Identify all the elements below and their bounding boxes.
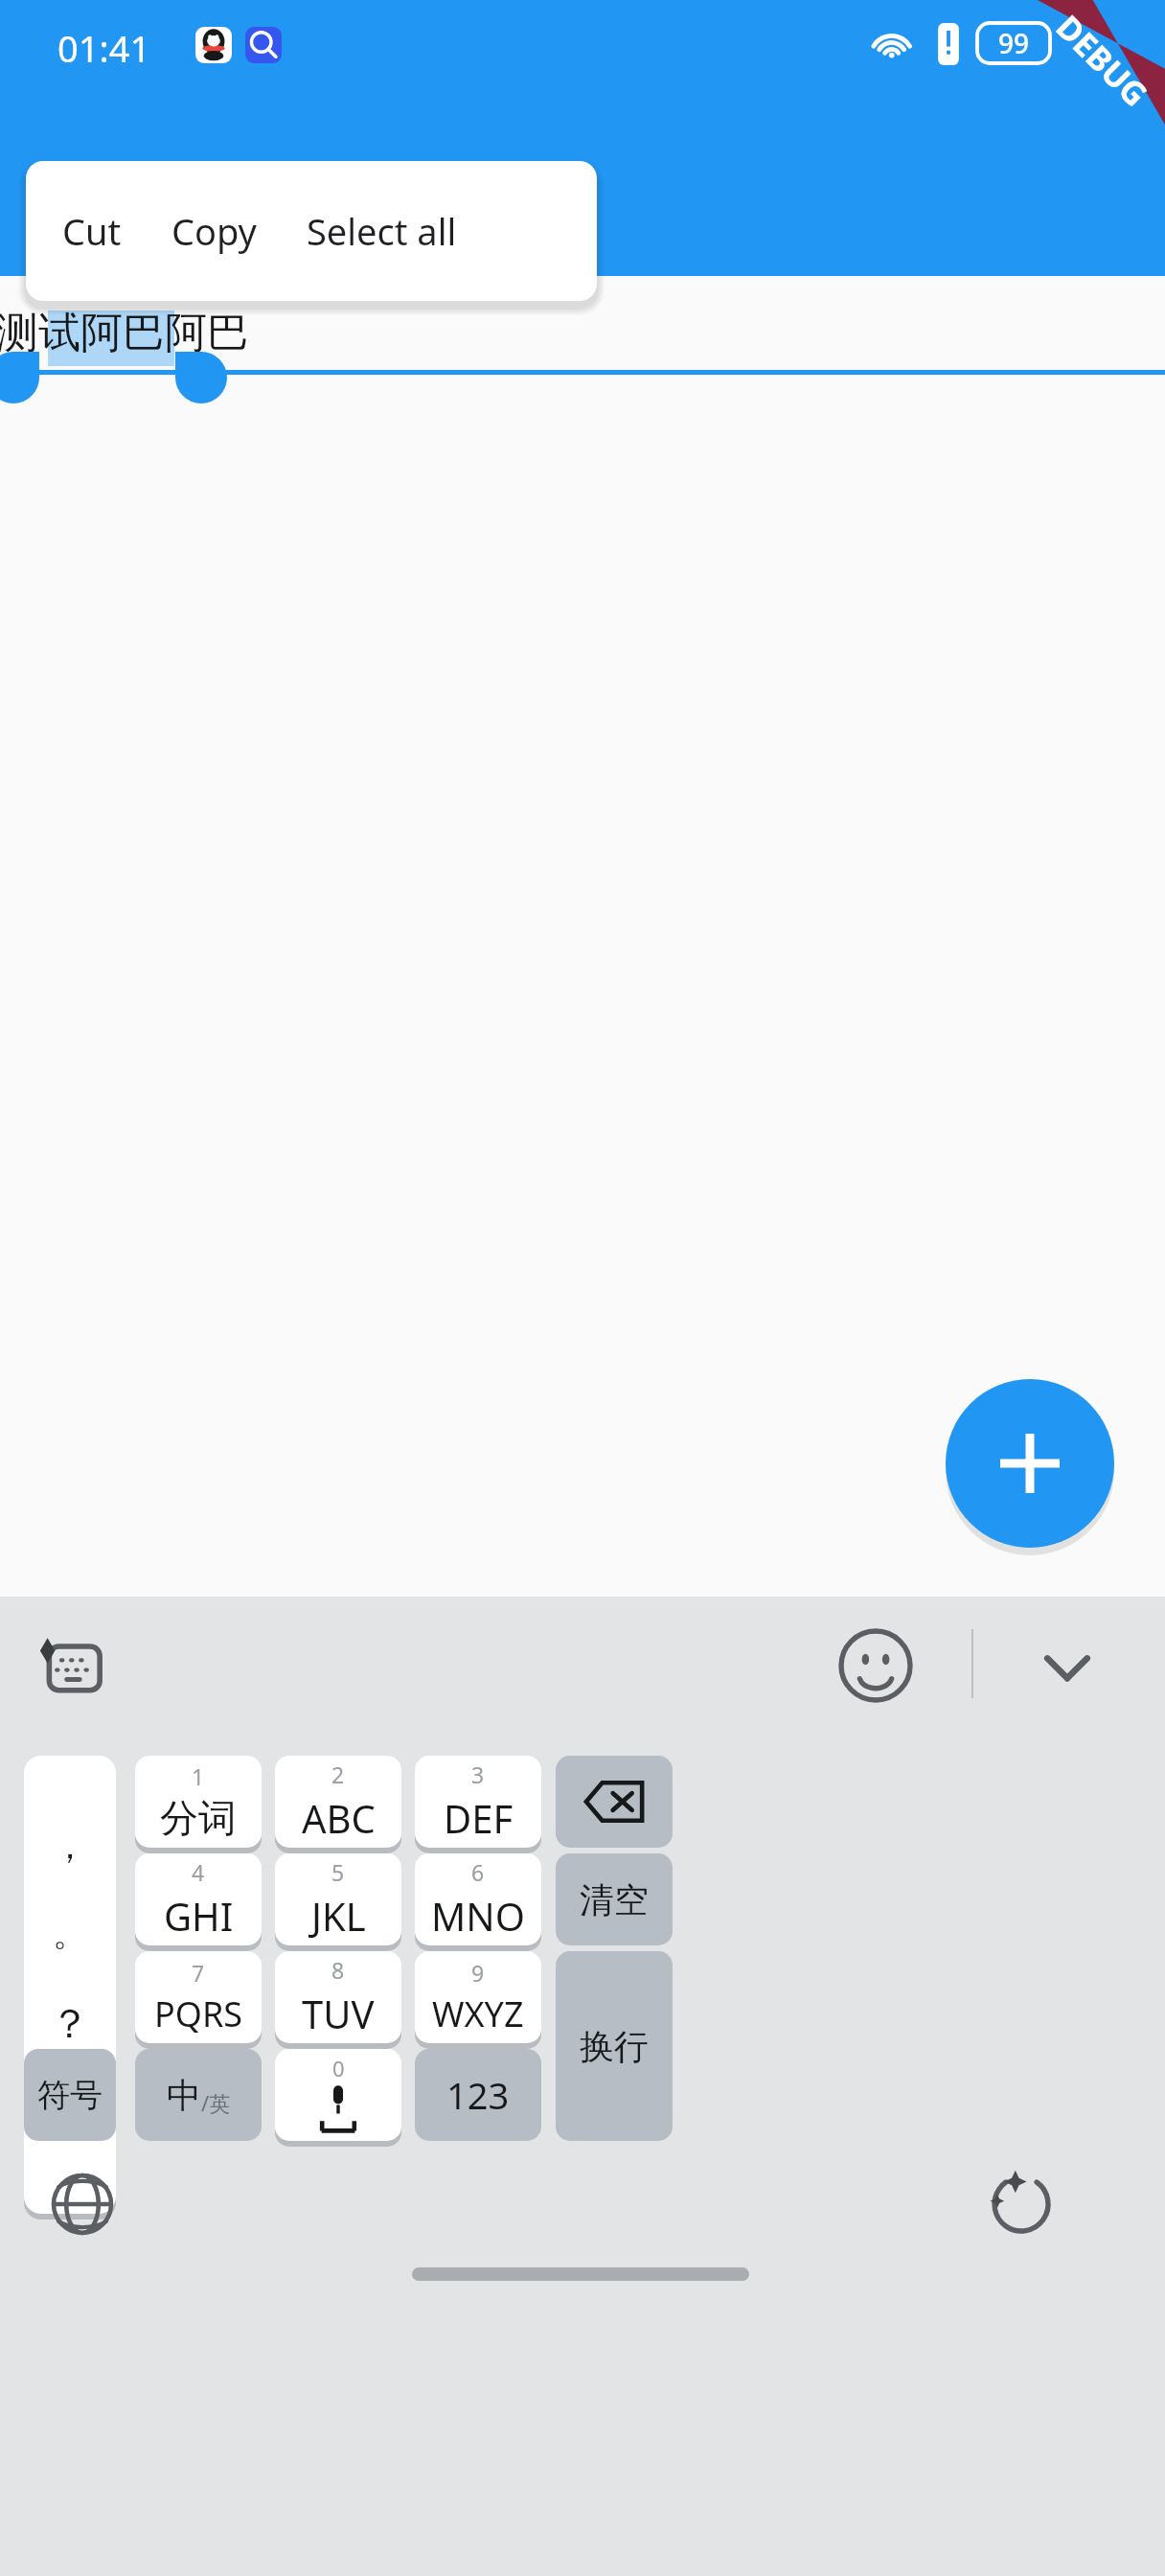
button[interactable]: 123 [415, 2049, 541, 2141]
staticText: Cut [62, 206, 122, 256]
button[interactable]: Emoji [837, 1627, 914, 1704]
staticText: 6 [471, 1857, 485, 1887]
button[interactable]: ， [24, 1756, 116, 2214]
staticText: ABC [302, 1792, 376, 1844]
staticText: ？ [50, 1999, 90, 2050]
staticText: 测试阿巴阿巴 [0, 307, 249, 359]
button[interactable]: 9 [415, 1951, 541, 2043]
staticText: JKL [311, 1890, 366, 1942]
button[interactable]: Cut [37, 183, 147, 279]
button[interactable]: 7 [135, 1951, 262, 2043]
staticText: ， [53, 1825, 87, 1868]
button[interactable]: 6 [415, 1853, 541, 1945]
button[interactable] [556, 1756, 673, 1848]
staticText: 99 [998, 25, 1030, 61]
button[interactable]: 0 [275, 2049, 401, 2141]
button[interactable]: Change language [50, 2172, 115, 2237]
staticText: 0 [332, 2054, 345, 2082]
staticText: 5 [331, 1857, 345, 1887]
staticText: Home Page [197, 165, 427, 222]
button[interactable]: Hide keyboard [1029, 1629, 1106, 1706]
staticText: 9 [471, 1958, 485, 1988]
staticText: 中 [167, 2074, 201, 2117]
staticText: 清空 [580, 1878, 649, 1921]
staticText: 分词 [160, 1794, 237, 1842]
button[interactable]: Select all [282, 183, 482, 279]
button[interactable]: 中 [135, 2049, 262, 2141]
button[interactable]: Add [946, 1379, 1114, 1548]
staticText: 符号 [37, 2075, 103, 2116]
staticText: 01:41 [57, 23, 151, 73]
staticText: 2 [331, 1759, 345, 1789]
staticText: Select all [307, 206, 457, 256]
staticText: GHI [164, 1890, 234, 1942]
button[interactable]: 清空 [556, 1853, 673, 1945]
button[interactable]: AI rewrite [989, 2172, 1054, 2237]
staticText: 1 [192, 1761, 205, 1791]
staticText: ！ [50, 2094, 90, 2145]
staticText: PQRS [154, 1990, 243, 2037]
button[interactable]: 1 [135, 1756, 262, 1848]
button[interactable]: 3 [415, 1756, 541, 1848]
staticText: TUV [302, 1988, 375, 2039]
staticText: MNO [431, 1890, 525, 1942]
staticText: 换行 [580, 2025, 649, 2068]
staticText: /英 [201, 2088, 231, 2117]
button[interactable]: 4 [135, 1853, 262, 1945]
staticText: WXYZ [432, 1990, 524, 2037]
staticText: 3 [471, 1759, 485, 1789]
button[interactable]: 5 [275, 1853, 401, 1945]
button[interactable]: Copy [147, 183, 282, 279]
staticText: DEF [444, 1792, 514, 1844]
button[interactable]: 2 [275, 1756, 401, 1848]
staticText: 。 [53, 1912, 87, 1955]
staticText: 4 [192, 1857, 205, 1887]
staticText: 7 [192, 1958, 205, 1988]
button[interactable]: AI keyboard [31, 1625, 115, 1710]
staticText: Copy [171, 206, 257, 256]
staticText: DEBUG [1047, 5, 1158, 116]
button[interactable]: 8 [275, 1951, 401, 2043]
button[interactable]: 符号 [24, 2049, 116, 2141]
staticText: 123 [446, 2070, 510, 2120]
button[interactable]: 换行 [556, 1951, 673, 2141]
staticText: 8 [331, 1955, 345, 1985]
